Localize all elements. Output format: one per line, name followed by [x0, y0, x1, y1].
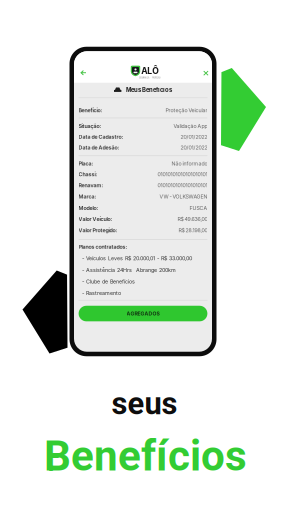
staticText: 20/01/2022 — [180, 134, 207, 140]
staticText: 20/01/2022 — [180, 144, 207, 151]
staticText: FUSCA — [189, 205, 207, 211]
staticText: Planos contratados: — [79, 244, 128, 250]
staticText: Proteção Veicular — [165, 107, 207, 113]
staticText: Data de Adesão: — [79, 144, 120, 151]
staticText: seus — [111, 386, 177, 422]
staticText: - Clube de Benefícios — [82, 278, 135, 285]
staticText: Placa: — [79, 160, 94, 167]
staticText: 01010101010101010101 — [157, 182, 207, 188]
staticText: Situação: — [79, 123, 102, 129]
staticText: - Assistência 24Hrs Abrange 200km — [82, 267, 176, 273]
staticText: VW - VOLKSWAGEN — [159, 193, 207, 200]
staticText: AGREGADOS — [126, 310, 159, 317]
staticText: R$ 49.636,00 — [177, 216, 207, 222]
button[interactable]: AGREGADOS — [79, 306, 207, 321]
staticText: Modelo: — [79, 205, 99, 211]
staticText: Valor Veículo: — [79, 216, 113, 222]
staticText: Validação App — [173, 123, 207, 129]
staticText: - Veículos Leves R$ 20.000,01 - R$ 33.00… — [82, 255, 192, 262]
staticText: Data de Cadastro: — [79, 134, 124, 140]
staticText: Meus Benefícios — [126, 86, 172, 93]
staticText: Chassi: — [79, 171, 98, 178]
staticText: Benefício: — [79, 107, 103, 113]
staticText: Não informado — [171, 160, 207, 167]
staticText: ALÔ — [141, 66, 159, 76]
staticText: SEGURANÇA · PROTEÇÃO — [139, 76, 161, 79]
button[interactable]: Back — [76, 65, 91, 80]
staticText: Marca: — [79, 193, 97, 200]
staticText: Benefícios — [44, 431, 247, 481]
staticText: 01010101010101010101 — [157, 171, 207, 178]
button[interactable]: Close — [199, 66, 213, 80]
staticText: Valor Protegido: — [79, 227, 118, 233]
staticText: - Rastreamento — [82, 290, 121, 296]
staticText: R$ 28.198,00 — [178, 227, 207, 233]
staticText: Renavam: — [79, 182, 104, 188]
